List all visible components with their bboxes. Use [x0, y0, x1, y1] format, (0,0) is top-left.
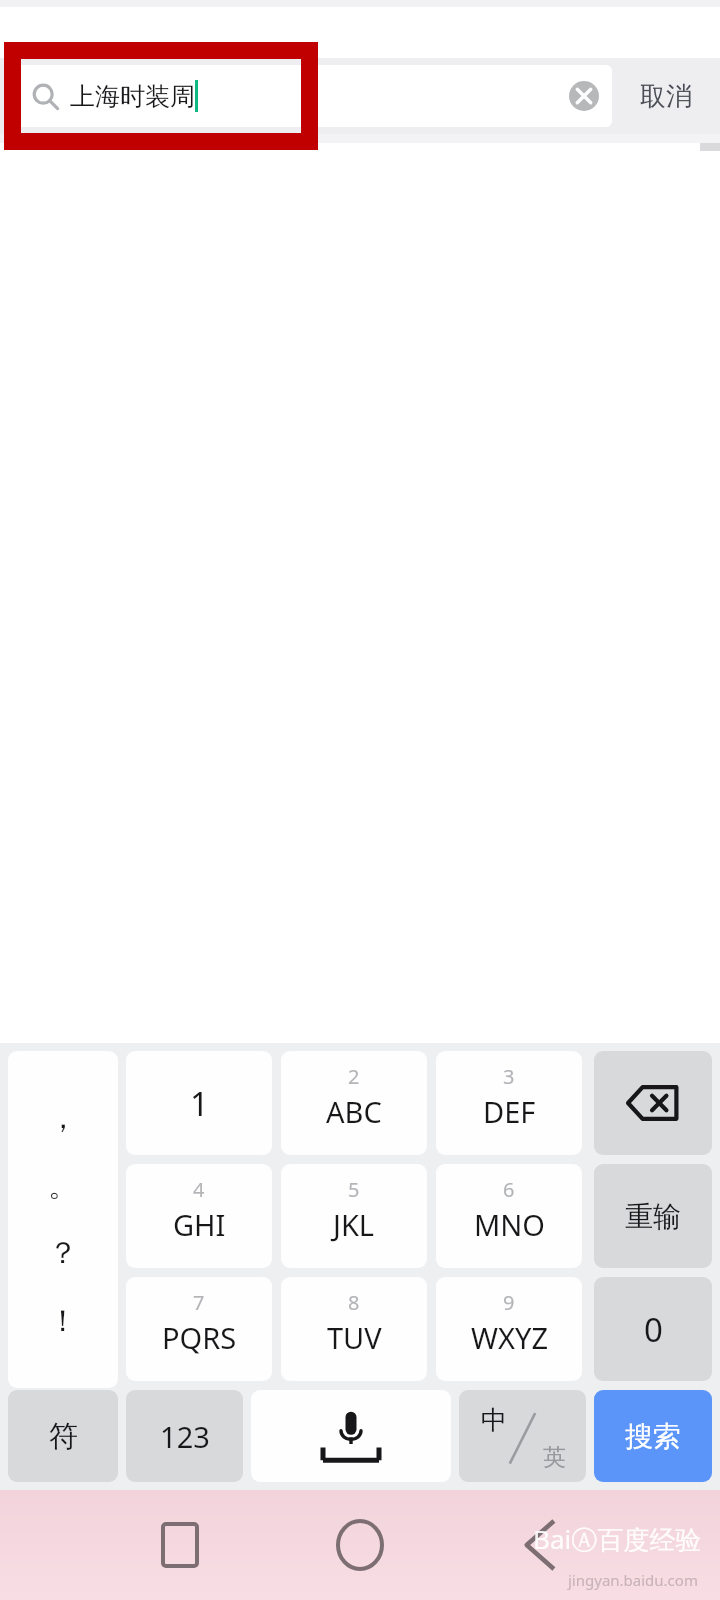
staticText: 123 — [160, 1417, 210, 1456]
button[interactable]: 搜索 — [594, 1390, 712, 1482]
staticText: ！ — [48, 1302, 78, 1340]
staticText: JKL — [333, 1205, 375, 1244]
button[interactable]: 7 — [126, 1277, 272, 1381]
staticText: 中 — [481, 1404, 507, 1437]
staticText: ？ — [48, 1234, 78, 1272]
button[interactable]: 重输 — [594, 1164, 712, 1268]
staticText: 重输 — [625, 1199, 681, 1234]
button[interactable]: 6 — [436, 1164, 582, 1268]
staticText: 8 — [348, 1289, 360, 1316]
staticText: DEF — [483, 1092, 536, 1131]
button[interactable]: 4 — [126, 1164, 272, 1268]
button[interactable]: 2 — [281, 1051, 427, 1155]
button[interactable]: 9 — [436, 1277, 582, 1381]
button[interactable]: 符 — [8, 1390, 118, 1482]
staticText: 2 — [348, 1063, 360, 1090]
button[interactable]: Voice input / Space — [251, 1390, 451, 1482]
button[interactable]: 取消 — [612, 58, 720, 134]
staticText: 搜索 — [625, 1419, 681, 1454]
staticText: 符 — [49, 1418, 78, 1455]
staticText: 0 — [644, 1307, 663, 1352]
staticText: 6 — [503, 1176, 515, 1203]
button[interactable]: Recents — [152, 1517, 208, 1573]
button[interactable]: Back — [514, 1517, 570, 1573]
button[interactable]: 5 — [281, 1164, 427, 1268]
staticText: BaiⒶ百度经验 — [533, 1521, 702, 1557]
button[interactable]: 1 — [126, 1051, 272, 1155]
button[interactable]: 8 — [281, 1277, 427, 1381]
staticText: 取消 — [640, 80, 692, 113]
button[interactable]: Home — [330, 1515, 390, 1575]
staticText: 4 — [193, 1176, 205, 1203]
staticText: 。 — [48, 1167, 78, 1205]
staticText: WXYZ — [471, 1318, 548, 1357]
staticText: 英 — [543, 1443, 566, 1472]
staticText: 1 — [190, 1081, 209, 1126]
staticText: 5 — [348, 1176, 360, 1203]
button[interactable]: ， — [8, 1051, 118, 1388]
staticText: GHI — [173, 1205, 226, 1244]
staticText: 7 — [193, 1289, 205, 1316]
button[interactable]: 上海时装周 — [14, 65, 612, 127]
staticText: MNO — [474, 1205, 545, 1244]
button[interactable]: Chinese / English toggle — [459, 1390, 586, 1482]
button[interactable]: Clear text — [560, 72, 608, 120]
staticText: 3 — [503, 1063, 515, 1090]
staticText: jingyan.baidu.com — [568, 1570, 698, 1590]
button[interactable]: 3 — [436, 1051, 582, 1155]
staticText: TUV — [327, 1318, 382, 1357]
staticText: PQRS — [162, 1318, 237, 1357]
button[interactable]: Backspace — [594, 1051, 712, 1155]
staticText: ， — [48, 1099, 78, 1137]
staticText: 9 — [503, 1289, 515, 1316]
button[interactable]: 123 — [126, 1390, 243, 1482]
staticText: ABC — [326, 1092, 382, 1131]
button[interactable]: 0 — [594, 1277, 712, 1381]
staticText: 上海时装周 — [70, 81, 195, 112]
